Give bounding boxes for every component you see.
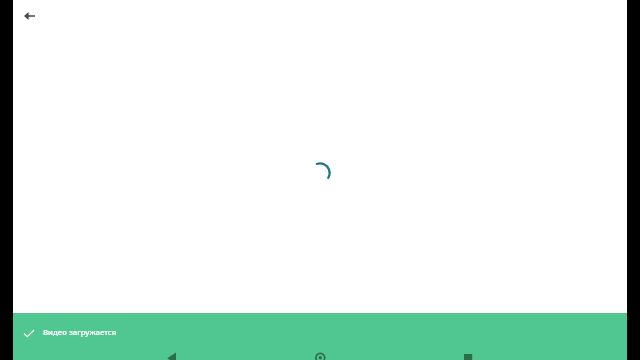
other: Loading bbox=[304, 157, 336, 189]
button[interactable]: Видео загружается bbox=[13, 313, 627, 360]
button[interactable]: Home bbox=[300, 346, 340, 360]
button[interactable]: Back bbox=[152, 346, 192, 360]
button[interactable]: Back bbox=[15, 2, 43, 30]
button[interactable]: Recent apps bbox=[448, 346, 488, 360]
staticText: Видео загружается bbox=[43, 327, 117, 338]
